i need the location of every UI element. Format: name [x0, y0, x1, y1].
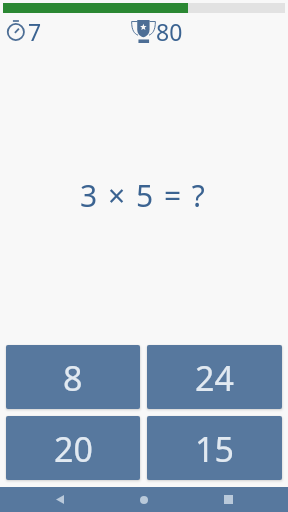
button[interactable]: Recents: [204, 487, 252, 512]
button[interactable]: 20: [6, 416, 140, 480]
staticText: 3 × 5 = ?: [80, 175, 207, 216]
button[interactable]: 8: [6, 345, 140, 409]
button[interactable]: 24: [147, 345, 282, 409]
staticText: 7: [28, 16, 42, 47]
staticText: 24: [195, 355, 234, 401]
staticText: 15: [195, 426, 234, 472]
button[interactable]: Back: [36, 487, 84, 512]
staticText: 8: [63, 355, 83, 401]
button[interactable]: Home: [120, 487, 168, 512]
staticText: 80: [156, 16, 183, 47]
button[interactable]: 15: [147, 416, 282, 480]
staticText: 20: [54, 426, 93, 472]
